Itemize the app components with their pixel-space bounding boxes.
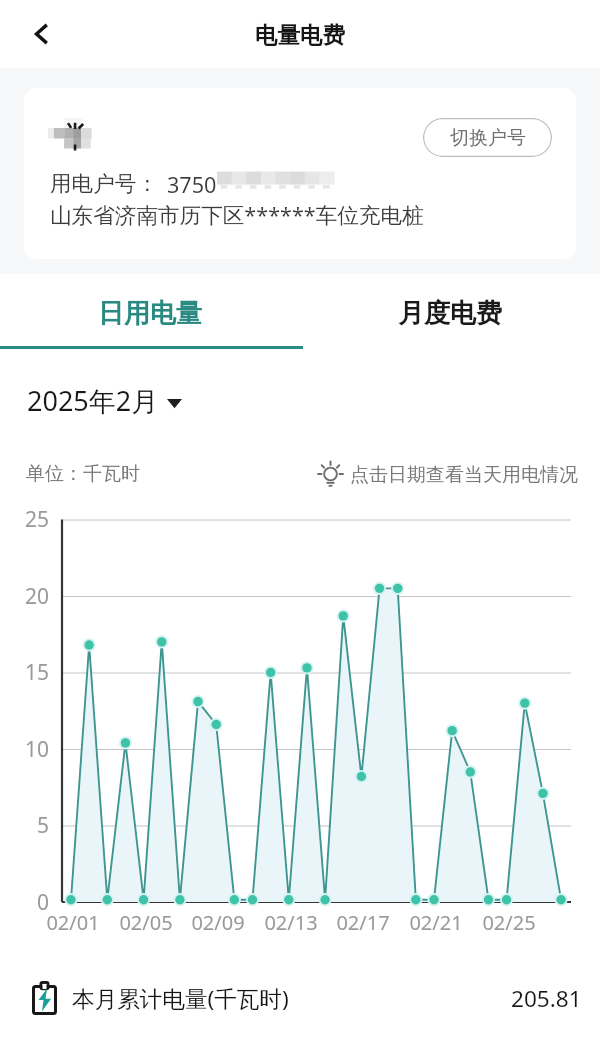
staticText: 本月累计电量(千瓦时) <box>72 983 289 1014</box>
button[interactable]: Back <box>20 12 64 56</box>
staticText: 02/05 <box>116 909 176 936</box>
staticText: 02/17 <box>333 909 393 936</box>
button[interactable]: 点击日期查看当天用电情况 <box>318 462 578 487</box>
staticText: 切换户号 <box>450 126 526 150</box>
staticText: 15 <box>13 658 49 687</box>
staticText: 20 <box>13 582 49 611</box>
staticText: 点击日期查看当天用电情况 <box>350 463 578 487</box>
staticText: 10 <box>13 735 49 764</box>
button[interactable]: 日用电量 <box>0 274 300 348</box>
staticText: 02/09 <box>188 909 248 936</box>
staticText: 电量电费 <box>255 21 345 49</box>
staticText: 25 <box>13 505 49 534</box>
button[interactable]: 切换户号 <box>423 118 552 157</box>
staticText: 日用电量 <box>98 297 202 330</box>
staticText: 用电户号： <box>50 170 158 197</box>
staticText: 山东省济南市历下区******车位充电桩 <box>50 200 424 230</box>
staticText: 02/21 <box>406 909 466 936</box>
staticText: 0 <box>13 888 49 917</box>
staticText: 205.81 <box>511 983 582 1014</box>
staticText: 单位：千瓦时 <box>26 462 140 486</box>
staticText: 5 <box>13 811 49 840</box>
staticText: 3750 <box>167 170 217 199</box>
staticText: 月度电费 <box>398 297 502 330</box>
staticText: 02/25 <box>479 909 539 936</box>
button[interactable]: 本月累计电量(千瓦时) <box>0 967 600 1029</box>
staticText: 02/13 <box>261 909 321 936</box>
button[interactable]: 切换户号 <box>24 88 576 259</box>
button[interactable]: 2025年2月 <box>27 382 182 419</box>
staticText: 2025年2月 <box>27 382 159 419</box>
button[interactable]: 月度电费 <box>300 274 600 348</box>
staticText: 02/01 <box>43 909 103 936</box>
